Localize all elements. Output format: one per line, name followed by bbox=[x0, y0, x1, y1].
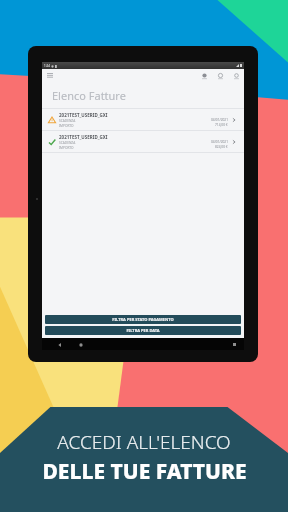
staticText: ACCEDI ALL'ELENCO bbox=[57, 429, 231, 455]
staticText: IMPORTO bbox=[59, 146, 74, 150]
staticText: SCADENZA bbox=[59, 119, 76, 123]
staticText: 2021TEST_USERID_GXI bbox=[59, 134, 108, 140]
button[interactable]: FILTRA PER DATA bbox=[45, 326, 241, 335]
staticText: DELLE TUE FATTURE bbox=[42, 457, 247, 486]
button[interactable]: Back bbox=[56, 341, 63, 348]
button[interactable]: 2021TEST_USERID_GXI bbox=[42, 131, 244, 152]
button[interactable]: Recents bbox=[231, 341, 238, 348]
staticText: FILTRA PER STATO PAGAMENTO bbox=[112, 317, 174, 322]
button[interactable]: Info bbox=[216, 71, 225, 80]
button[interactable]: Refresh bbox=[200, 71, 209, 80]
staticText: 04/01/2021 bbox=[211, 140, 228, 144]
staticText: 1:24 bbox=[44, 64, 50, 68]
staticText: Elenco Fatture bbox=[52, 88, 126, 103]
staticText: FILTRA PER DATA bbox=[126, 328, 160, 333]
button[interactable]: Home bbox=[77, 341, 84, 348]
staticText: 824,00 € bbox=[215, 145, 228, 149]
button[interactable]: 2021TEST_USERID_GXI bbox=[42, 109, 244, 130]
staticText: 2021TEST_USERID_GXI bbox=[59, 112, 108, 118]
staticText: 714,00 € bbox=[215, 123, 228, 127]
staticText: IMPORTO bbox=[59, 124, 74, 128]
staticText: 04/01/2021 bbox=[211, 118, 228, 122]
button[interactable]: FILTRA PER STATO PAGAMENTO bbox=[45, 315, 241, 324]
button[interactable]: Menu bbox=[45, 71, 54, 80]
staticText: SCADENZA bbox=[59, 141, 76, 145]
button[interactable]: Search bbox=[232, 71, 241, 80]
